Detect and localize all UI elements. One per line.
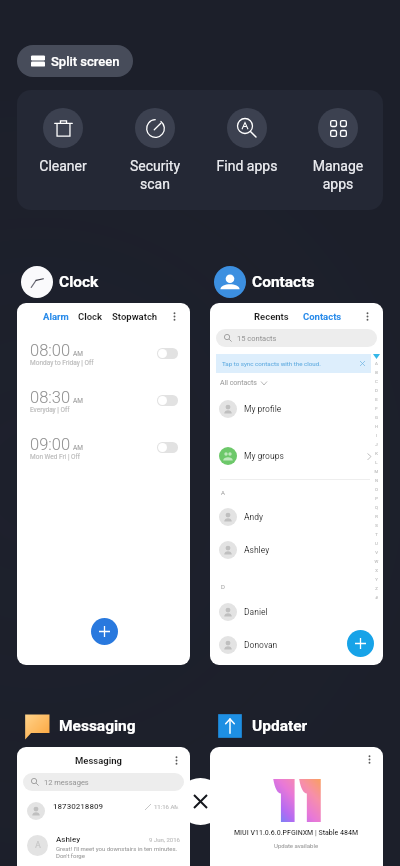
staticText: 15 contacts — [237, 334, 277, 343]
button[interactable]: Manage apps — [293, 90, 383, 192]
button[interactable]: Find apps — [201, 90, 293, 174]
staticText: D — [221, 583, 225, 590]
button[interactable]: Add contact — [347, 630, 374, 657]
staticText: L — [372, 460, 381, 465]
button[interactable]: Cleaner — [17, 90, 109, 174]
staticText: U — [372, 541, 381, 546]
button[interactable]: A — [17, 835, 190, 866]
button[interactable]: Stopwatch — [112, 311, 158, 322]
staticText: 08:00 — [30, 341, 71, 360]
button[interactable]: Ashley — [210, 537, 383, 563]
staticText: W — [372, 559, 381, 564]
button[interactable]: Toggle alarm — [157, 395, 178, 406]
staticText: E — [372, 397, 381, 402]
button[interactable]: More options — [210, 747, 383, 866]
button[interactable]: All contacts — [220, 377, 267, 389]
button[interactable]: Daniel — [210, 599, 383, 625]
staticText: H — [372, 424, 381, 429]
staticText: AM — [73, 350, 83, 358]
staticText: Y — [372, 577, 381, 582]
staticText: F — [372, 406, 381, 411]
staticText: 9 Jun, 2016 — [149, 836, 180, 843]
staticText: Z — [372, 586, 381, 591]
button[interactable]: Toggle alarm — [157, 348, 178, 359]
button[interactable]: More options — [363, 312, 372, 321]
staticText: AM — [73, 444, 83, 452]
staticText: A — [372, 361, 381, 366]
staticText: 08:30 — [30, 388, 71, 407]
staticText: My profile — [244, 404, 282, 414]
button[interactable]: Alarm — [17, 303, 190, 665]
button[interactable]: My profile — [210, 396, 383, 422]
staticText: Updater — [252, 717, 308, 735]
button[interactable]: 18730218809 — [17, 802, 190, 833]
button[interactable]: Andy — [210, 504, 383, 530]
staticText: Ashley — [56, 835, 81, 844]
staticText: Contacts — [252, 273, 315, 291]
staticText: 09:00 — [30, 435, 71, 454]
button[interactable]: More options — [365, 755, 374, 764]
staticText: A — [221, 489, 225, 496]
button[interactable]: Donovan — [210, 632, 383, 658]
staticText: T — [372, 532, 381, 537]
button[interactable]: Contacts — [303, 311, 342, 322]
staticText: Cleaner — [17, 158, 109, 174]
staticText: Clock — [59, 273, 99, 291]
staticText: Mon Wed Fri | Off — [30, 453, 81, 461]
staticText: Security scan — [109, 158, 201, 192]
button[interactable]: Recents — [210, 303, 383, 665]
staticText: Split screen — [51, 54, 120, 69]
staticText: C — [372, 379, 381, 384]
button[interactable]: Tap to sync contacts with the cloud. — [216, 354, 371, 373]
staticText: AM — [73, 397, 83, 405]
button[interactable]: 09:00 — [17, 433, 190, 473]
button[interactable]: 15 contacts — [216, 329, 377, 347]
staticText: G — [372, 415, 381, 420]
button[interactable]: Security scan — [109, 90, 201, 192]
button[interactable]: Toggle alarm — [157, 442, 178, 453]
button[interactable]: Split screen — [17, 45, 133, 77]
staticText: My groups — [244, 451, 284, 461]
button[interactable]: Add alarm — [91, 618, 118, 645]
staticText: Update available — [274, 842, 319, 849]
staticText: O — [372, 487, 381, 492]
staticText: 18730218809 — [53, 802, 104, 811]
button[interactable]: Recents — [254, 311, 289, 322]
staticText: Manage apps — [293, 158, 383, 192]
button[interactable]: My groups — [210, 443, 383, 469]
staticText: P — [372, 496, 381, 501]
staticText: Monday to Friday | Off — [30, 359, 94, 367]
button[interactable]: Alarm — [43, 311, 69, 322]
staticText: Donovan — [244, 640, 278, 650]
staticText: S — [372, 523, 381, 528]
button[interactable]: 08:30 — [17, 386, 190, 426]
staticText: V — [372, 550, 381, 555]
staticText: MIUI V11.0.6.0.PFGINXM | Stable 484M — [234, 829, 359, 837]
staticText: K — [372, 451, 381, 456]
staticText: 12 messages — [44, 778, 89, 787]
staticText: Ashley — [244, 545, 270, 555]
button[interactable]: Messaging — [17, 747, 190, 866]
staticText: Andy — [244, 512, 264, 522]
staticText: X — [372, 568, 381, 573]
staticText: Everyday | Off — [30, 406, 70, 414]
button[interactable]: Clock — [78, 311, 103, 322]
button[interactable]: Close recents — [177, 778, 224, 825]
button[interactable]: More options — [172, 756, 181, 765]
staticText: Messaging — [59, 717, 136, 735]
staticText: M — [372, 469, 381, 474]
staticText: D — [372, 388, 381, 393]
staticText: 11:16 AM — [154, 803, 180, 810]
staticText: Tap to sync contacts with the cloud. — [222, 360, 321, 367]
staticText: # — [372, 595, 381, 600]
button[interactable]: 08:00 — [17, 339, 190, 379]
staticText: All contacts — [220, 379, 257, 387]
staticText: R — [372, 514, 381, 519]
staticText: J — [372, 442, 381, 447]
button[interactable]: 12 messages — [23, 773, 184, 791]
staticText: I — [372, 433, 381, 438]
staticText: Q — [372, 505, 381, 510]
button[interactable]: More options — [170, 312, 179, 321]
staticText: B — [372, 370, 381, 375]
staticText: Great! I'll meet you downstairs in ten m… — [56, 845, 178, 860]
